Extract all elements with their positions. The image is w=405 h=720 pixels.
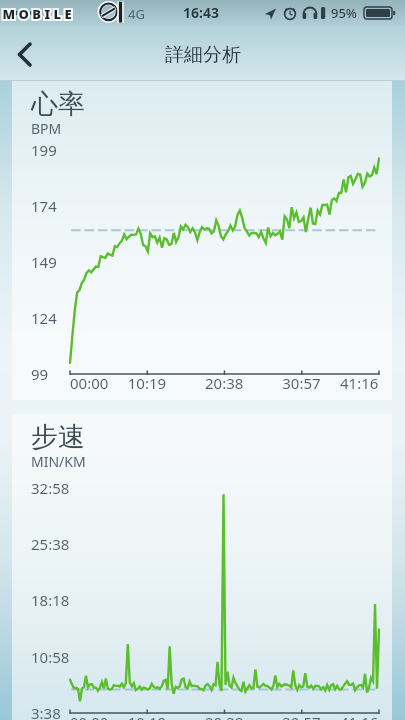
staticText: 4G	[128, 5, 145, 23]
button[interactable]: 心率	[12, 81, 392, 400]
staticText: MIN/KM	[31, 452, 86, 471]
staticText: 詳細分析	[165, 43, 241, 67]
button[interactable]: Back	[0, 26, 56, 81]
staticText: 16:43	[183, 3, 219, 22]
button[interactable]: 步速	[12, 414, 392, 720]
staticText: 步速	[31, 420, 85, 454]
staticText: 95%	[331, 4, 357, 22]
staticText: 心率	[31, 87, 85, 121]
staticText: BPM	[31, 119, 62, 138]
